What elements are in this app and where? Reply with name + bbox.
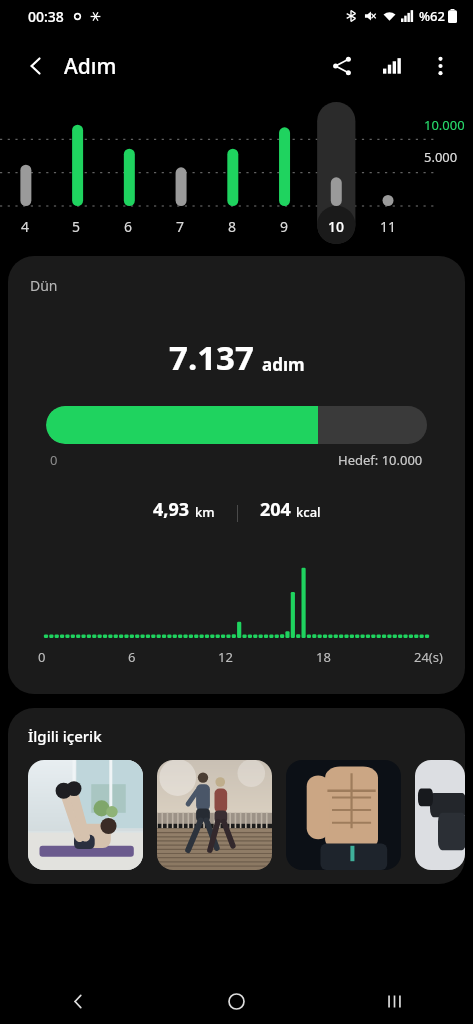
button[interactable]: Exercise article: [415, 760, 465, 870]
staticText: 18: [316, 648, 331, 666]
button[interactable]: 8: [206, 217, 258, 236]
staticText: 5: [72, 217, 81, 236]
staticText: 6: [124, 217, 133, 236]
staticText: 9: [280, 217, 289, 236]
staticText: 0: [50, 451, 58, 469]
button[interactable]: Back: [0, 978, 157, 1024]
button[interactable]: 7: [154, 217, 206, 236]
staticText: adım: [262, 353, 305, 376]
staticText: 7: [176, 217, 185, 236]
button[interactable]: 4: [0, 217, 51, 236]
staticText: 7.137: [169, 335, 254, 380]
button[interactable]: 11: [362, 217, 414, 236]
button[interactable]: 9: [258, 217, 310, 236]
button[interactable]: 5: [51, 217, 102, 236]
staticText: 204: [260, 497, 291, 522]
staticText: 4: [21, 217, 30, 236]
staticText: 10.000: [424, 116, 465, 134]
staticText: 24(s): [414, 648, 443, 666]
button[interactable]: Running article: [157, 760, 272, 870]
staticText: 5.000: [424, 148, 458, 166]
staticText: 6: [128, 648, 136, 666]
button[interactable]: More options: [417, 43, 463, 89]
staticText: 11: [380, 217, 397, 236]
staticText: km: [195, 503, 215, 521]
button[interactable]: Statistics: [369, 43, 415, 89]
staticText: 4,93: [153, 497, 190, 522]
button[interactable]: Core workout article: [28, 760, 143, 870]
button[interactable]: Share: [319, 43, 365, 89]
staticText: kcal: [296, 503, 321, 521]
staticText: %62: [419, 7, 445, 25]
staticText: 0: [38, 648, 46, 666]
staticText: 12: [218, 648, 233, 666]
staticText: İlgili içerik: [28, 726, 102, 746]
staticText: Adım: [64, 52, 117, 81]
button[interactable]: Back: [14, 44, 58, 88]
staticText: Hedef: 10.000: [338, 451, 423, 469]
button[interactable]: Dün: [8, 256, 465, 694]
button[interactable]: Abs workout article: [286, 760, 401, 870]
button[interactable]: 6: [102, 217, 154, 236]
staticText: Dün: [30, 276, 58, 295]
staticText: 8: [228, 217, 237, 236]
button[interactable]: Home: [157, 978, 315, 1024]
button[interactable]: Recent apps: [315, 978, 473, 1024]
staticText: 00:38: [28, 7, 64, 26]
staticText: 10: [328, 217, 345, 236]
button[interactable]: 10: [310, 217, 362, 236]
